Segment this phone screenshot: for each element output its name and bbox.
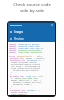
staticText: kotlinx.coroutines.: [17, 49, 43, 51]
staticText: }: [11, 85, 13, 87]
staticText: }: [10, 73, 12, 75]
staticText: }: [11, 71, 13, 73]
staticText: import: [9, 43, 17, 45]
staticText: model.fetch(id) { res ->: [11, 79, 42, 81]
staticText: = Model(): [33, 57, 46, 59]
staticText: private fun: [10, 75, 26, 77]
staticText: override fun: [10, 89, 27, 91]
staticText: view.setOnClickListener: [11, 67, 40, 69]
staticText: super.onStop(): [11, 91, 29, 93]
staticText: setContentView(R.layout: [11, 63, 40, 65]
staticText: androidx.core.app.Ac: [17, 47, 44, 49]
button[interactable]: Images: [8, 28, 55, 35]
staticText: onStop: [27, 89, 35, 91]
staticText: Images: [14, 30, 24, 34]
staticText: super.onCreate(state): [11, 61, 38, 63]
staticText: import: [9, 51, 17, 53]
staticText: android.view.View: [17, 45, 40, 47]
button[interactable]: Repository: [10, 23, 23, 26]
staticText: () {: [35, 89, 41, 91]
staticText: onCreate: [27, 59, 38, 61]
staticText: java.util.ArrayList: [17, 51, 43, 53]
staticText: adapter.submitList(res): [13, 81, 42, 83]
staticText: MainActivity: [17, 55, 33, 57]
staticText: (id: Int): [32, 75, 44, 77]
staticText: import: [9, 49, 17, 51]
staticText: override fun: [10, 59, 27, 61]
staticText: import: [9, 47, 17, 49]
staticText: model: [26, 57, 33, 59]
staticText: android.os.Bundle: [17, 43, 40, 45]
staticText: // fetch the data now: [11, 77, 38, 79]
staticText: val view = findViewById: [11, 65, 40, 67]
staticText: import: [9, 45, 17, 47]
staticText: startActivity(intent): [13, 69, 40, 71]
staticText: progress.hide(): [13, 83, 32, 85]
staticText: (s) {: [38, 59, 45, 61]
staticText: load: [26, 75, 32, 77]
staticText: Check source code: [13, 1, 51, 7]
staticText: private val: [10, 57, 26, 59]
staticText: class: [9, 55, 17, 57]
staticText: }: [10, 87, 12, 89]
button[interactable]: Preview: [8, 35, 55, 42]
staticText: job?.cancel(): [11, 93, 28, 95]
staticText: Preview: [14, 37, 24, 41]
staticText: : Acti: [33, 55, 42, 57]
staticText: side-by-side: [20, 7, 44, 13]
